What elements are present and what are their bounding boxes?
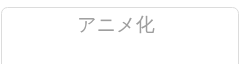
staticText: アニメ化 [0, 13, 236, 37]
button[interactable]: アニメ化 [0, 0, 240, 64]
